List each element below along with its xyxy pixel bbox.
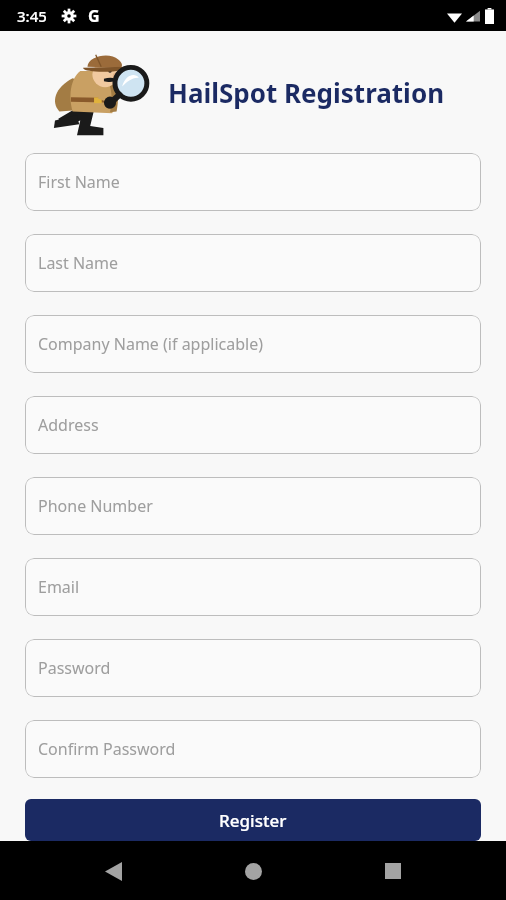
button[interactable]: Register bbox=[25, 799, 481, 841]
staticText: HailSpot Registration bbox=[168, 75, 445, 110]
button[interactable]: Recent apps bbox=[375, 853, 411, 889]
staticText: Phone Number bbox=[38, 495, 153, 517]
button[interactable]: First Name bbox=[25, 153, 481, 211]
button[interactable]: Home bbox=[235, 853, 271, 889]
staticText: G bbox=[88, 5, 100, 27]
button[interactable]: Company Name (if applicable) bbox=[25, 315, 481, 373]
button[interactable]: Back bbox=[95, 853, 131, 889]
staticText: Register bbox=[219, 809, 287, 832]
staticText: Password bbox=[38, 657, 111, 679]
staticText: Address bbox=[38, 414, 99, 436]
staticText: 3:45 bbox=[17, 6, 47, 26]
button[interactable]: Password bbox=[25, 639, 481, 697]
button[interactable]: Address bbox=[25, 396, 481, 454]
button[interactable]: Phone Number bbox=[25, 477, 481, 535]
staticText: Last Name bbox=[38, 252, 119, 274]
button[interactable]: Email bbox=[25, 558, 481, 616]
staticText: First Name bbox=[38, 171, 120, 193]
staticText: Confirm Password bbox=[38, 738, 176, 760]
staticText: Email bbox=[38, 576, 80, 598]
button[interactable]: Last Name bbox=[25, 234, 481, 292]
staticText: Company Name (if applicable) bbox=[38, 333, 264, 355]
button[interactable]: Confirm Password bbox=[25, 720, 481, 778]
